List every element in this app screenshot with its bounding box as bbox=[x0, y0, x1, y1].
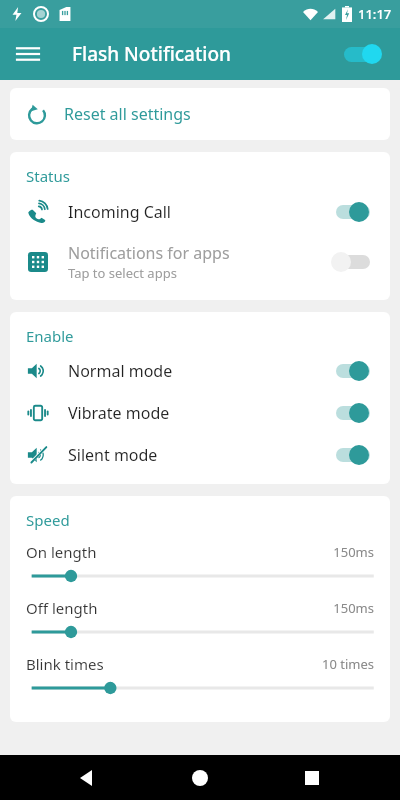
button[interactable]: Master flash toggle bbox=[336, 34, 388, 74]
staticText: Normal mode bbox=[68, 360, 330, 382]
button[interactable]: On length bbox=[10, 534, 390, 590]
button[interactable]: Home bbox=[176, 755, 224, 800]
button[interactable]: Incoming Call bbox=[10, 190, 390, 234]
staticText: Silent mode bbox=[68, 444, 330, 466]
button[interactable]: Recent apps bbox=[288, 755, 336, 800]
staticText: Flash Notification bbox=[72, 41, 231, 67]
button[interactable]: Vibrate mode bbox=[10, 392, 390, 434]
staticText: Reset all settings bbox=[64, 103, 191, 125]
button[interactable]: Open navigation drawer bbox=[8, 34, 48, 74]
staticText: 150ms bbox=[333, 543, 374, 561]
staticText: 150ms bbox=[333, 599, 374, 617]
button[interactable]: Reset all settings bbox=[10, 88, 390, 140]
button[interactable]: Back bbox=[64, 755, 112, 800]
staticText: Enable bbox=[26, 326, 74, 346]
staticText: Speed bbox=[26, 510, 70, 530]
button[interactable]: Silent mode bbox=[10, 434, 390, 476]
staticText: 10 times bbox=[321, 655, 374, 673]
button[interactable]: Notifications for apps bbox=[10, 234, 390, 290]
button[interactable]: Off length bbox=[10, 590, 390, 646]
staticText: Blink times bbox=[26, 654, 321, 674]
staticText: 11:17 bbox=[358, 5, 392, 23]
staticText: Tap to select apps bbox=[68, 264, 177, 282]
button[interactable]: Blink times bbox=[10, 646, 390, 702]
button[interactable]: Normal mode bbox=[10, 350, 390, 392]
staticText: On length bbox=[26, 542, 333, 562]
staticText: Vibrate mode bbox=[68, 402, 330, 424]
staticText: Off length bbox=[26, 598, 333, 618]
staticText: Status bbox=[26, 166, 70, 186]
staticText: Incoming Call bbox=[68, 201, 330, 223]
staticText: Notifications for apps bbox=[68, 242, 230, 264]
